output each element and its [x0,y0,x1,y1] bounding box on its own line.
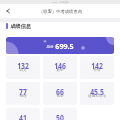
staticText: 语文 [6,68,40,73]
staticText: 外语 [80,68,114,73]
button[interactable]: 总分 [6,37,114,54]
staticText: 10:24 · 中考查询 [51,1,69,4]
button[interactable]: Back [0,4,16,18]
staticText: 总分 [46,45,54,50]
staticText: 数学 [43,68,77,73]
button[interactable]: 50 [43,108,77,120]
button[interactable]: 66 [43,82,77,105]
staticText: 77 [10,85,36,97]
staticText: 物理 [6,94,40,99]
staticText: 699.5 [55,41,74,51]
button[interactable]: 132 [6,56,40,79]
staticText: 45.5 [84,85,110,97]
button[interactable]: 146 [43,56,77,79]
button[interactable]: 41 [6,108,40,120]
staticText: （联盟）中考成绩查询 [39,9,82,14]
staticText: 化学 [43,94,77,99]
staticText: 41 [10,111,36,120]
staticText: 146 [47,59,73,71]
staticText: 道德与法治 [80,94,114,99]
staticText: 132 [10,59,36,71]
button[interactable]: 45.5 [80,82,114,105]
staticText: 成绩信息 [10,23,31,29]
staticText: 142 [84,59,110,71]
button[interactable]: 77 [6,82,40,105]
staticText: 66 [47,85,73,97]
staticText: 50 [47,111,73,120]
button[interactable]: 142 [80,56,114,79]
